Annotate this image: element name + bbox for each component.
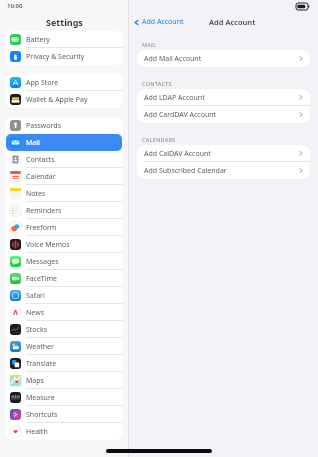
button[interactable]: Add Account [129, 17, 188, 27]
button[interactable]: Add Mail Account [137, 50, 310, 67]
staticText: Safari [26, 291, 45, 301]
button[interactable]: Contacts [5, 151, 123, 168]
staticText: Add Account [209, 17, 256, 27]
staticText: Voice Memos [26, 240, 70, 250]
staticText: MAIL [142, 41, 157, 48]
staticText: Settings [46, 16, 83, 28]
button[interactable]: News [5, 304, 123, 321]
staticText: Messages [26, 257, 59, 267]
staticText: App Store [26, 78, 59, 88]
button[interactable]: Add Subscribed Calendar [137, 162, 310, 179]
button[interactable]: Battery [5, 31, 123, 48]
button[interactable]: Stocks [5, 321, 123, 338]
staticText: Shortcuts [26, 410, 58, 420]
staticText: Stocks [26, 325, 48, 335]
staticText: CONTACTS [142, 80, 172, 87]
button[interactable]: App Store [5, 74, 123, 91]
staticText: Add CalDAV Account [144, 149, 211, 159]
staticText: Add Mail Account [144, 54, 202, 64]
staticText: Passwords [26, 121, 62, 131]
staticText: Add LDAP Account [144, 93, 205, 103]
staticText: Freeform [26, 223, 57, 233]
staticText: FaceTime [26, 274, 58, 284]
staticText: Health [26, 427, 48, 437]
button[interactable]: Shortcuts [5, 406, 123, 423]
button[interactable]: Mail [5, 134, 123, 151]
staticText: Maps [26, 376, 44, 386]
button[interactable]: Messages [5, 253, 123, 270]
button[interactable]: Maps [5, 372, 123, 389]
staticText: Reminders [26, 206, 62, 216]
staticText: CALENDARS [142, 136, 176, 143]
staticText: 10:00 [7, 2, 23, 10]
button[interactable]: Wallet & Apple Pay [5, 91, 123, 108]
button[interactable]: Passwords [5, 117, 123, 134]
staticText: Translate [26, 359, 57, 369]
staticText: Notes [26, 189, 46, 199]
staticText: Mail [26, 138, 40, 148]
button[interactable]: Measure [5, 389, 123, 406]
staticText: Wallet & Apple Pay [26, 95, 88, 105]
button[interactable]: Health [5, 423, 123, 440]
button[interactable]: Translate [5, 355, 123, 372]
staticText: Battery [26, 35, 50, 45]
button[interactable]: Notes [5, 185, 123, 202]
staticText: Calendar [26, 172, 56, 182]
staticText: Weather [26, 342, 54, 352]
button[interactable]: Reminders [5, 202, 123, 219]
staticText: Add Subscribed Calendar [144, 166, 227, 176]
button[interactable]: Voice Memos [5, 236, 123, 253]
button[interactable]: Calendar [5, 168, 123, 185]
button[interactable]: Freeform [5, 219, 123, 236]
button[interactable]: Safari [5, 287, 123, 304]
button[interactable]: Add LDAP Account [137, 89, 310, 106]
button[interactable]: Weather [5, 338, 123, 355]
staticText: Privacy & Security [26, 52, 85, 62]
staticText: Measure [26, 393, 55, 403]
button[interactable]: Add CardDAV Account [137, 106, 310, 123]
staticText: Add CardDAV Account [144, 110, 217, 120]
button[interactable]: FaceTime [5, 270, 123, 287]
button[interactable]: Add CalDAV Account [137, 145, 310, 162]
staticText: News [26, 308, 44, 318]
button[interactable]: Privacy & Security [5, 48, 123, 65]
staticText: Contacts [26, 155, 55, 165]
staticText: Add Account [142, 17, 184, 27]
